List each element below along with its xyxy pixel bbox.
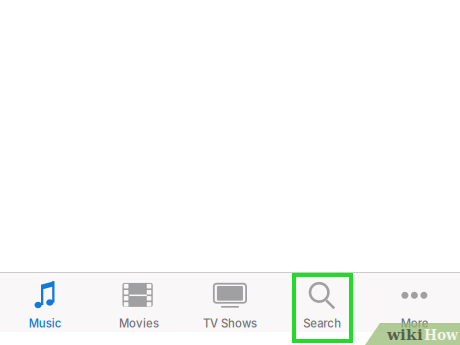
button[interactable]: Music xyxy=(0,273,92,332)
staticText: More xyxy=(401,317,429,330)
button[interactable]: Search xyxy=(276,273,368,332)
staticText: How xyxy=(424,326,458,344)
staticText: Movies xyxy=(119,317,159,330)
staticText: Search xyxy=(303,317,341,330)
button[interactable]: TV Shows xyxy=(184,273,276,332)
button[interactable]: More xyxy=(368,273,460,332)
staticText: Music xyxy=(29,317,62,330)
staticText: TV Shows xyxy=(203,317,257,330)
button[interactable]: Movies xyxy=(92,273,184,332)
staticText: wiki xyxy=(387,326,423,344)
